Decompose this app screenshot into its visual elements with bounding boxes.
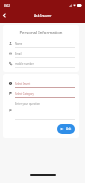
staticText: Enter your question	[15, 102, 40, 106]
staticText: Select Category	[15, 92, 34, 96]
button[interactable]: Back	[0, 10, 10, 21]
staticText: mobile number	[15, 62, 34, 66]
button[interactable]: Email	[3, 50, 79, 60]
button[interactable]: Select Category	[3, 90, 79, 100]
button[interactable]: Ask	[57, 124, 75, 134]
staticText: 8:02	[4, 4, 10, 8]
staticText: Select Insert	[15, 82, 31, 86]
button[interactable]: Attach file	[9, 109, 12, 112]
staticText: Ask	[66, 127, 72, 131]
staticText: Ask Insurer	[34, 14, 52, 18]
staticText: Personal Information	[3, 29, 79, 35]
staticText: Name	[15, 42, 23, 46]
staticText: Email	[15, 52, 22, 56]
button[interactable]: Name	[3, 40, 79, 50]
button[interactable]: mobile number	[3, 60, 79, 70]
button[interactable]: Select Insert	[3, 80, 79, 90]
